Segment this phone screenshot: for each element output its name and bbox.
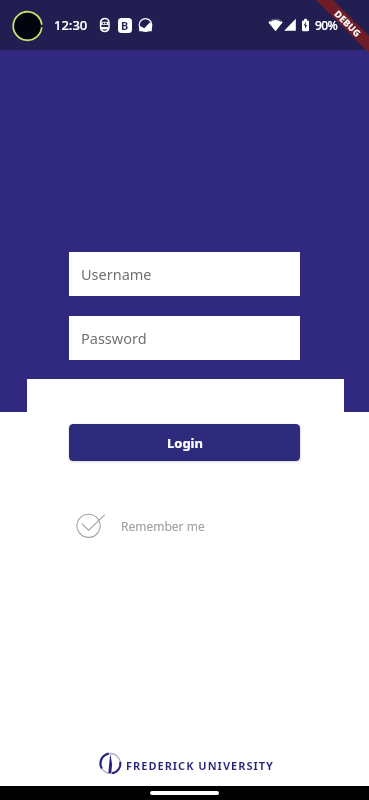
staticText: B bbox=[121, 18, 129, 33]
staticText: Username bbox=[81, 264, 152, 284]
staticText: 12:30 bbox=[54, 16, 88, 34]
button[interactable]: Username bbox=[69, 252, 300, 296]
staticText: Remember me bbox=[121, 518, 205, 534]
staticText: DEBUG bbox=[332, 7, 364, 39]
staticText: Login bbox=[167, 434, 203, 452]
staticText: FREDERICK UNIVERSITY bbox=[126, 758, 274, 773]
staticText: 90% bbox=[315, 17, 338, 33]
button[interactable]: Login bbox=[69, 424, 300, 461]
button[interactable]: Password bbox=[69, 316, 300, 360]
other: Frederick University logo bbox=[99, 752, 122, 775]
staticText: Password bbox=[81, 328, 147, 348]
button[interactable]: Remember me bbox=[70, 507, 205, 545]
